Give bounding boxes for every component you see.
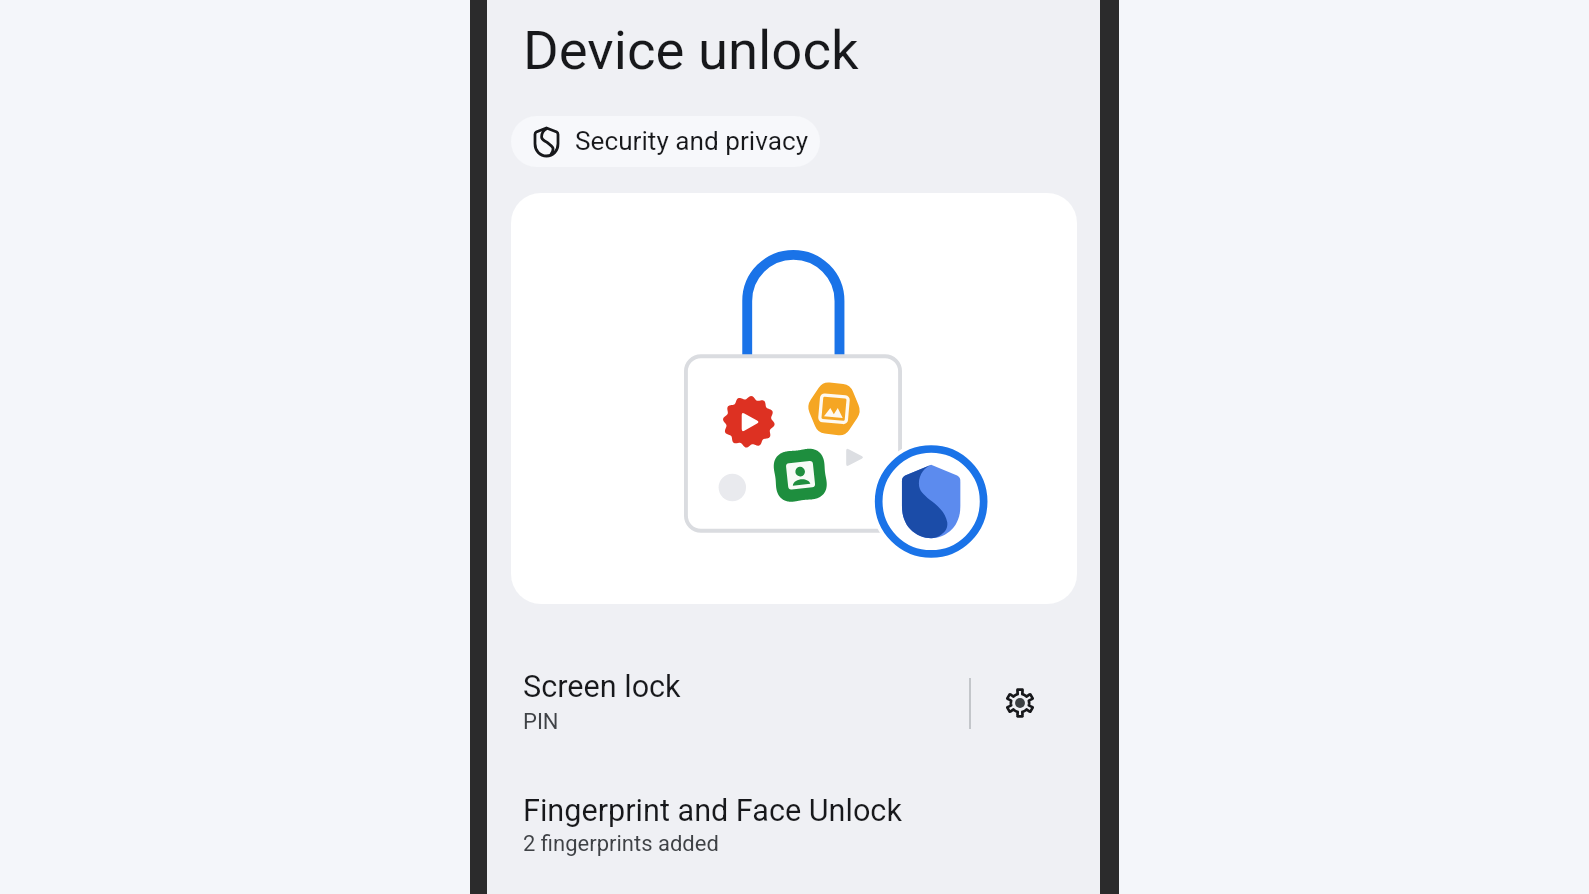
staticText: Screen lock — [523, 669, 681, 705]
button[interactable]: Fingerprint and Face Unlock — [487, 785, 1100, 881]
button[interactable]: Screen lock settings — [971, 647, 1100, 759]
button[interactable]: Security and privacy — [511, 116, 820, 167]
staticText: Device unlock — [523, 18, 859, 82]
staticText: PIN — [523, 709, 559, 735]
button[interactable]: Screen lock — [487, 647, 969, 759]
staticText: Security and privacy — [575, 126, 809, 157]
staticText: Fingerprint and Face Unlock — [523, 793, 902, 829]
staticText: 2 fingerprints added — [523, 831, 719, 857]
